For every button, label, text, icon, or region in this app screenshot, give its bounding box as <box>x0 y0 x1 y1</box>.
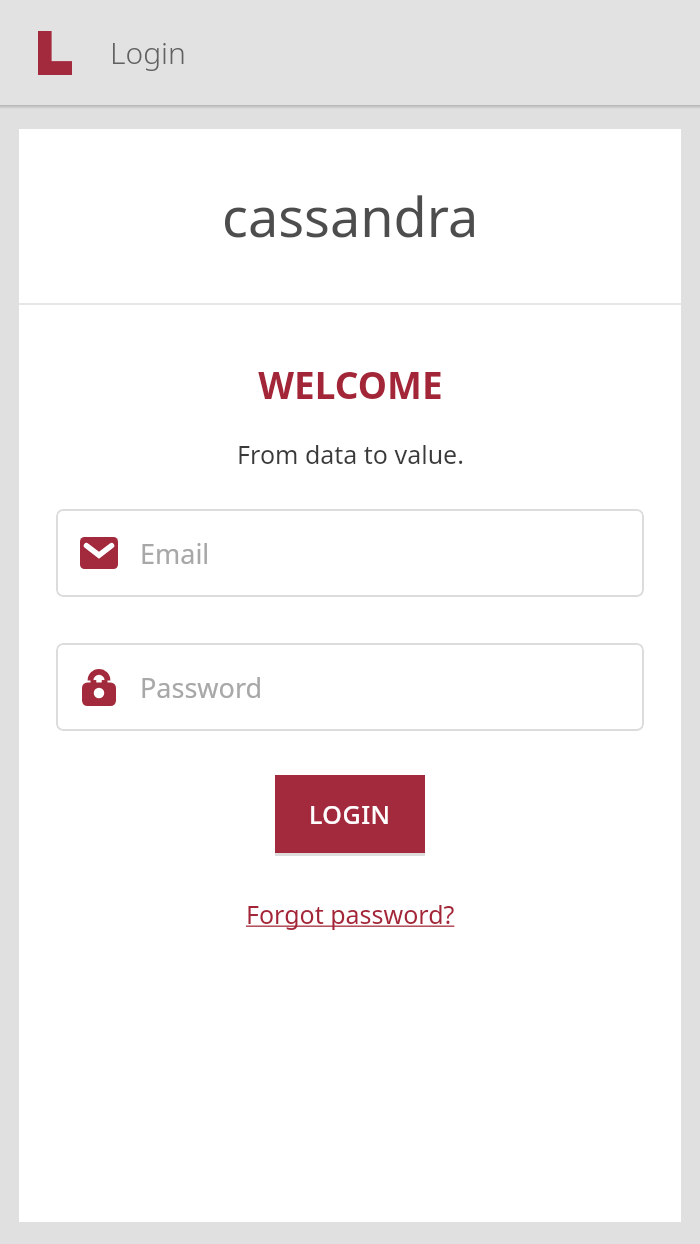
button[interactable]: LOGIN <box>275 775 425 853</box>
staticText: cassandra <box>222 179 479 253</box>
other: Logo <box>38 31 72 75</box>
button[interactable]: Password <box>56 643 644 731</box>
staticText: LOGIN <box>309 797 391 831</box>
staticText: Password <box>140 669 263 706</box>
staticText: Forgot password? <box>246 897 455 931</box>
staticText: WELCOME <box>258 359 443 409</box>
staticText: Email <box>140 535 210 572</box>
staticText: From data to value. <box>237 437 464 471</box>
button[interactable]: Email <box>56 509 644 597</box>
staticText: Login <box>110 32 186 73</box>
other: Password <box>82 668 116 706</box>
other: Email <box>80 537 118 569</box>
button[interactable]: Forgot password? <box>246 897 455 931</box>
